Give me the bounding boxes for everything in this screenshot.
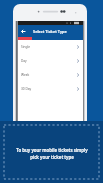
button[interactable]: Week [18, 68, 83, 82]
button[interactable]: 30 Day [18, 82, 83, 96]
staticText: Week [21, 73, 30, 77]
staticText: Single [21, 45, 31, 49]
button[interactable]: Back [20, 28, 27, 35]
staticText: Day [21, 59, 27, 63]
button[interactable]: Single [18, 40, 83, 54]
button[interactable]: Day [18, 54, 83, 68]
staticText: 30 Day [21, 87, 32, 91]
staticText: To buy your mobile tickets simply pick y… [16, 147, 88, 160]
staticText: Select Ticket Type [33, 29, 67, 34]
